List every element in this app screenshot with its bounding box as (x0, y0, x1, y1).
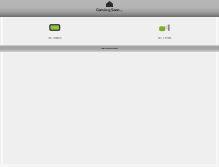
button[interactable]: Switch to desktop site (0, 45, 219, 52)
button[interactable]: Full Website (0, 22, 109, 40)
staticText: Tell A Friend (158, 36, 171, 39)
staticText: Coming Soon... (96, 7, 123, 12)
staticText: Full Website (48, 36, 61, 39)
button[interactable]: Tell A Friend (109, 22, 219, 40)
staticText: Switch to desktop site (101, 47, 118, 50)
